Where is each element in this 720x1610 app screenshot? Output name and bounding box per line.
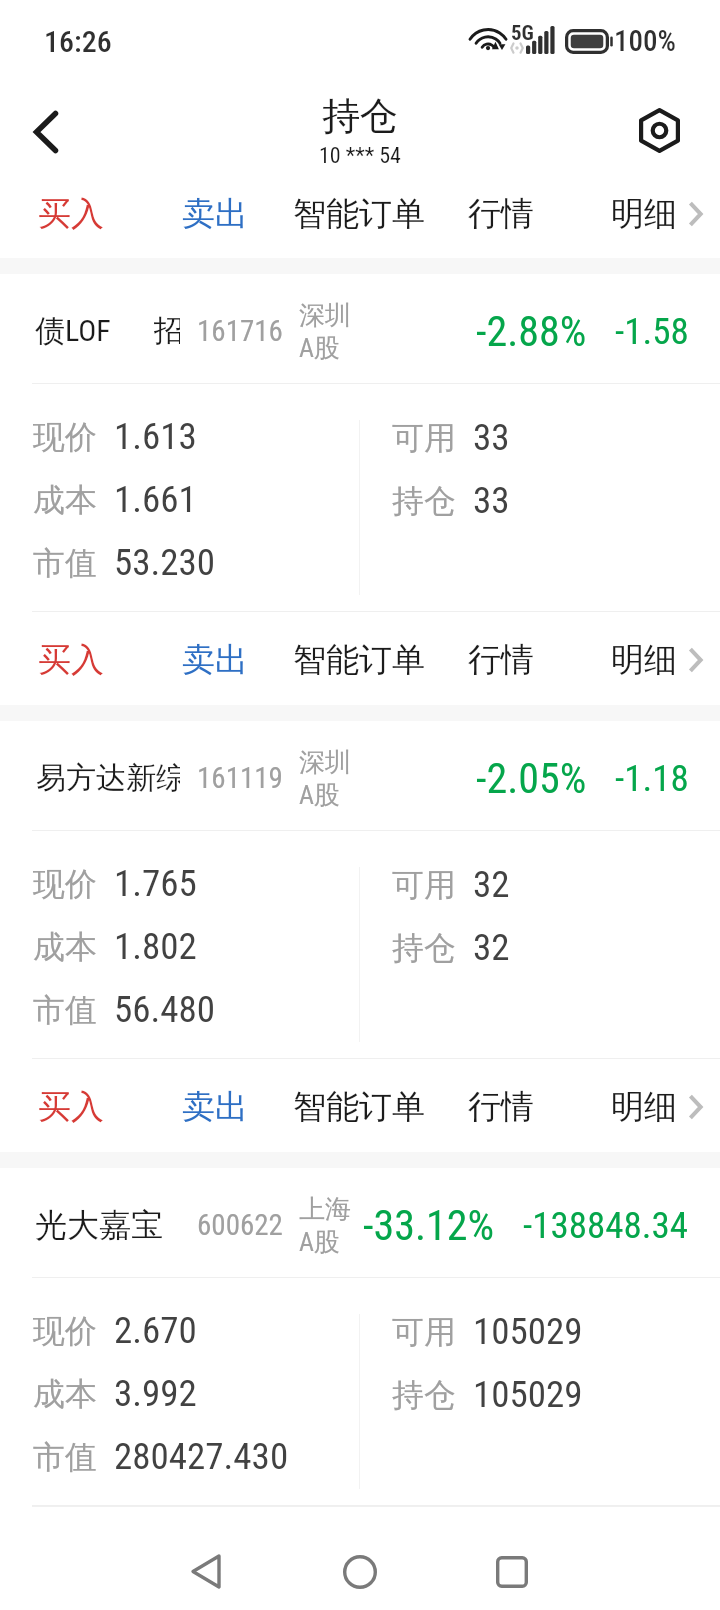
staticText: 可用: [392, 418, 456, 458]
staticText: -2.05%: [476, 754, 587, 803]
staticText: 智能订单: [293, 639, 425, 681]
staticText: 16:26: [44, 24, 112, 59]
button[interactable]: Home: [315, 1533, 405, 1610]
staticText: 行情: [468, 1533, 534, 1575]
staticText: 智能订单: [293, 1086, 425, 1128]
staticText: 100%: [614, 24, 676, 58]
button[interactable]: 卖出: [175, 1060, 255, 1153]
button[interactable]: 买入: [31, 613, 111, 706]
staticText: 明细: [611, 1086, 677, 1128]
staticText: 易方达新综债: [36, 759, 180, 797]
staticText: 明细: [611, 193, 677, 235]
button[interactable]: 卖出: [175, 175, 255, 253]
button[interactable]: 易方达新综债: [0, 721, 720, 1152]
staticText: 56.480: [114, 988, 216, 1031]
staticText: 53.230: [114, 541, 216, 584]
staticText: 持仓: [392, 481, 456, 521]
button[interactable]: Settings: [621, 97, 693, 169]
button[interactable]: 明细: [604, 175, 684, 253]
button[interactable]: 卖出: [175, 1507, 255, 1600]
button[interactable]: 行情: [461, 175, 541, 253]
staticText: 智能订单: [293, 1533, 425, 1575]
staticText: -1.58: [615, 310, 689, 353]
button[interactable]: 债LOF: [0, 274, 720, 705]
button[interactable]: 行情: [461, 1060, 541, 1153]
button[interactable]: More: [672, 1060, 720, 1153]
staticText: 市值: [33, 543, 97, 583]
staticText: 成本: [33, 480, 97, 520]
button[interactable]: 智能订单: [284, 1060, 434, 1153]
staticText: 600622: [197, 1208, 283, 1242]
staticText: 成本: [33, 1374, 97, 1414]
staticText: A股: [299, 1226, 340, 1259]
staticText: -138848.34: [523, 1204, 689, 1247]
button[interactable]: Back: [10, 97, 82, 169]
button[interactable]: 买入: [31, 1060, 111, 1153]
button[interactable]: Back: [161, 1533, 251, 1610]
button[interactable]: 明细: [604, 1060, 684, 1153]
staticText: 可用: [392, 1312, 456, 1352]
staticText: 现价: [33, 864, 97, 904]
staticText: 现价: [33, 1311, 97, 1351]
staticText: 智能订单: [293, 193, 425, 235]
button[interactable]: 行情: [461, 1507, 541, 1600]
staticText: 1.802: [114, 925, 197, 968]
staticText: 上海: [299, 1193, 351, 1226]
staticText: 成本: [33, 927, 97, 967]
staticText: A股: [299, 779, 340, 812]
staticText: 市值: [33, 1437, 97, 1477]
button[interactable]: More: [672, 175, 720, 253]
button[interactable]: 明细: [604, 613, 684, 706]
staticText: 161119: [197, 761, 283, 795]
staticText: 卖出: [182, 193, 248, 235]
staticText: 105029: [473, 1310, 583, 1353]
button[interactable]: 智能订单: [284, 1507, 434, 1600]
staticText: 卖出: [182, 1086, 248, 1128]
staticText: -33.12%: [363, 1201, 495, 1250]
staticText: 买入: [38, 1086, 104, 1128]
staticText: 33: [473, 416, 510, 459]
staticText: 明细: [611, 639, 677, 681]
button[interactable]: 卖出: [175, 613, 255, 706]
staticText: 债LOF: [35, 312, 111, 350]
staticText: 280427.430: [114, 1435, 289, 1478]
staticText: 32: [473, 926, 510, 969]
button[interactable]: 智能订单: [284, 613, 434, 706]
staticText: 1.661: [114, 478, 197, 521]
staticText: -2.88%: [476, 307, 587, 356]
button[interactable]: 买入: [31, 175, 111, 253]
staticText: 持仓: [392, 928, 456, 968]
staticText: 33: [473, 479, 510, 522]
staticText: 行情: [468, 193, 534, 235]
staticText: 买入: [38, 193, 104, 235]
staticText: 买入: [38, 639, 104, 681]
staticText: 卖出: [182, 1533, 248, 1575]
staticText: 持仓: [322, 92, 398, 140]
staticText: 深圳: [299, 299, 351, 332]
button[interactable]: Recents: [467, 1533, 557, 1610]
staticText: 可用: [392, 865, 456, 905]
staticText: 3.992: [114, 1372, 197, 1415]
staticText: 32: [473, 863, 510, 906]
button[interactable]: 智能订单: [284, 175, 434, 253]
staticText: 5G: [511, 21, 534, 46]
button[interactable]: 行情: [461, 613, 541, 706]
button[interactable]: 光大嘉宝: [0, 1168, 720, 1599]
staticText: -1.18: [615, 757, 689, 800]
staticText: 行情: [468, 1086, 534, 1128]
staticText: 2.670: [114, 1309, 197, 1352]
staticText: 招: [154, 312, 180, 350]
staticText: 105029: [473, 1373, 583, 1416]
staticText: 1.765: [114, 862, 197, 905]
staticText: 深圳: [299, 746, 351, 779]
staticText: 1.613: [114, 415, 197, 458]
staticText: 10 *** 54: [319, 143, 401, 169]
staticText: 市值: [33, 990, 97, 1030]
staticText: 持仓: [392, 1375, 456, 1415]
button[interactable]: More: [672, 613, 720, 706]
staticText: 161716: [197, 314, 283, 348]
